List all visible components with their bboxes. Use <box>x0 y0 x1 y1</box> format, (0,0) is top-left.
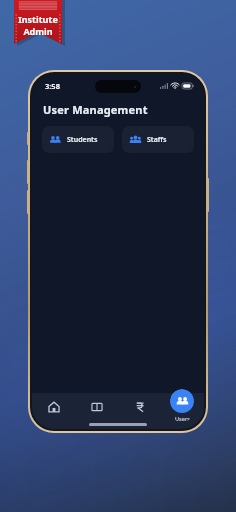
staticText: 3:58 <box>45 81 60 91</box>
button[interactable]: Staffs <box>122 126 194 153</box>
staticText: User Management <box>43 102 148 117</box>
button[interactable]: Home <box>32 393 75 420</box>
staticText: Staffs <box>147 135 167 145</box>
staticText: Institute <box>18 13 58 25</box>
button[interactable]: Students <box>42 126 114 153</box>
staticText: Users <box>175 415 190 422</box>
button[interactable]: Fees <box>118 393 161 420</box>
staticText: Students <box>67 135 98 145</box>
button[interactable]: Users <box>170 389 194 422</box>
staticText: Admin <box>23 25 53 37</box>
button[interactable]: Courses <box>75 393 118 420</box>
